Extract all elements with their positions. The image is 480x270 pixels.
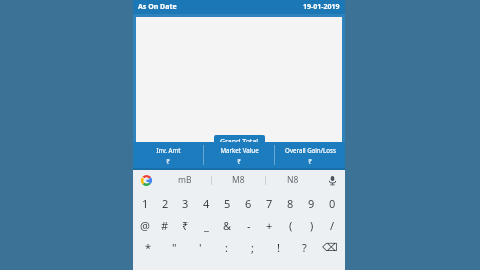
staticText: 0 [329,196,336,211]
staticText: ) [310,218,314,233]
staticText: 5 [224,196,231,211]
staticText: ' [199,240,202,255]
button[interactable]: 8 [280,192,301,214]
button[interactable]: 2 [155,192,175,214]
staticText: 4 [203,196,210,211]
staticText: - [247,218,251,233]
staticText: ? [302,240,307,255]
staticText: 6 [245,196,252,211]
staticText: 9 [308,196,315,211]
button[interactable]: mB [159,170,211,190]
staticText: Market Value [220,146,259,154]
staticText: 1 [142,196,149,211]
staticText: ; [251,240,254,255]
button[interactable]: 6 [238,192,259,214]
button[interactable]: 9 [301,192,322,214]
button[interactable]: : [213,236,239,258]
staticText: Inv. Amt [156,146,181,154]
staticText: Overall Gain/Loss [285,146,336,154]
staticText: * [145,240,152,255]
button[interactable] [136,17,342,142]
staticText: ⌫ [322,241,338,254]
button[interactable]: Grand Total [214,135,265,149]
button[interactable]: # [155,214,175,236]
staticText: ₹ [166,157,170,166]
staticText: + [266,218,273,233]
staticText: ( [289,218,293,233]
button[interactable]: ' [187,236,213,258]
button[interactable]: Market Value [204,142,274,168]
button[interactable]: Voice input [319,170,345,190]
staticText: mB [178,174,192,186]
button[interactable]: Inv. Amt [133,142,203,168]
button[interactable]: ⌫ [317,236,343,258]
button[interactable]: As On Date [133,0,345,14]
button[interactable]: ₹ [175,214,196,236]
staticText: 3 [182,196,189,211]
button[interactable]: 5 [217,192,238,214]
staticText: @ [140,218,150,233]
button[interactable]: Overall Gain/Loss [275,142,345,168]
button[interactable]: 4 [196,192,217,214]
staticText: & [223,218,232,233]
button[interactable]: _ [196,214,217,236]
staticText: M8 [232,174,245,186]
button[interactable]: M8 [212,170,265,190]
button[interactable]: * [135,236,161,258]
button[interactable]: + [259,214,280,236]
staticText: : [225,240,228,255]
staticText: As On Date [138,2,177,12]
button[interactable]: ? [291,236,317,258]
staticText: / [330,218,335,233]
button[interactable]: ) [301,214,322,236]
button[interactable]: ( [280,214,301,236]
staticText: " [172,240,177,255]
button[interactable]: 0 [322,192,343,214]
staticText: 19-01-2019 [303,2,340,12]
button[interactable]: 3 [175,192,196,214]
staticText: ₹ [237,157,241,166]
button[interactable]: 7 [259,192,280,214]
button[interactable]: " [161,236,187,258]
button[interactable]: - [238,214,259,236]
staticText: N8 [287,174,299,186]
button[interactable]: Google search [133,170,159,190]
staticText: 7 [266,196,273,211]
button[interactable]: ; [239,236,265,258]
staticText: _ [204,218,209,233]
button[interactable]: / [322,214,343,236]
staticText: ₹ [182,218,189,233]
button[interactable]: 1 [135,192,155,214]
staticText: 2 [162,196,169,211]
staticText: ₹ [308,157,312,166]
staticText: ! [277,240,280,255]
button[interactable]: & [217,214,238,236]
button[interactable]: ! [265,236,291,258]
button[interactable]: N8 [266,170,319,190]
staticText: 8 [287,196,294,211]
staticText: # [161,218,169,233]
staticText: Grand Total [220,137,259,147]
button[interactable]: @ [135,214,155,236]
